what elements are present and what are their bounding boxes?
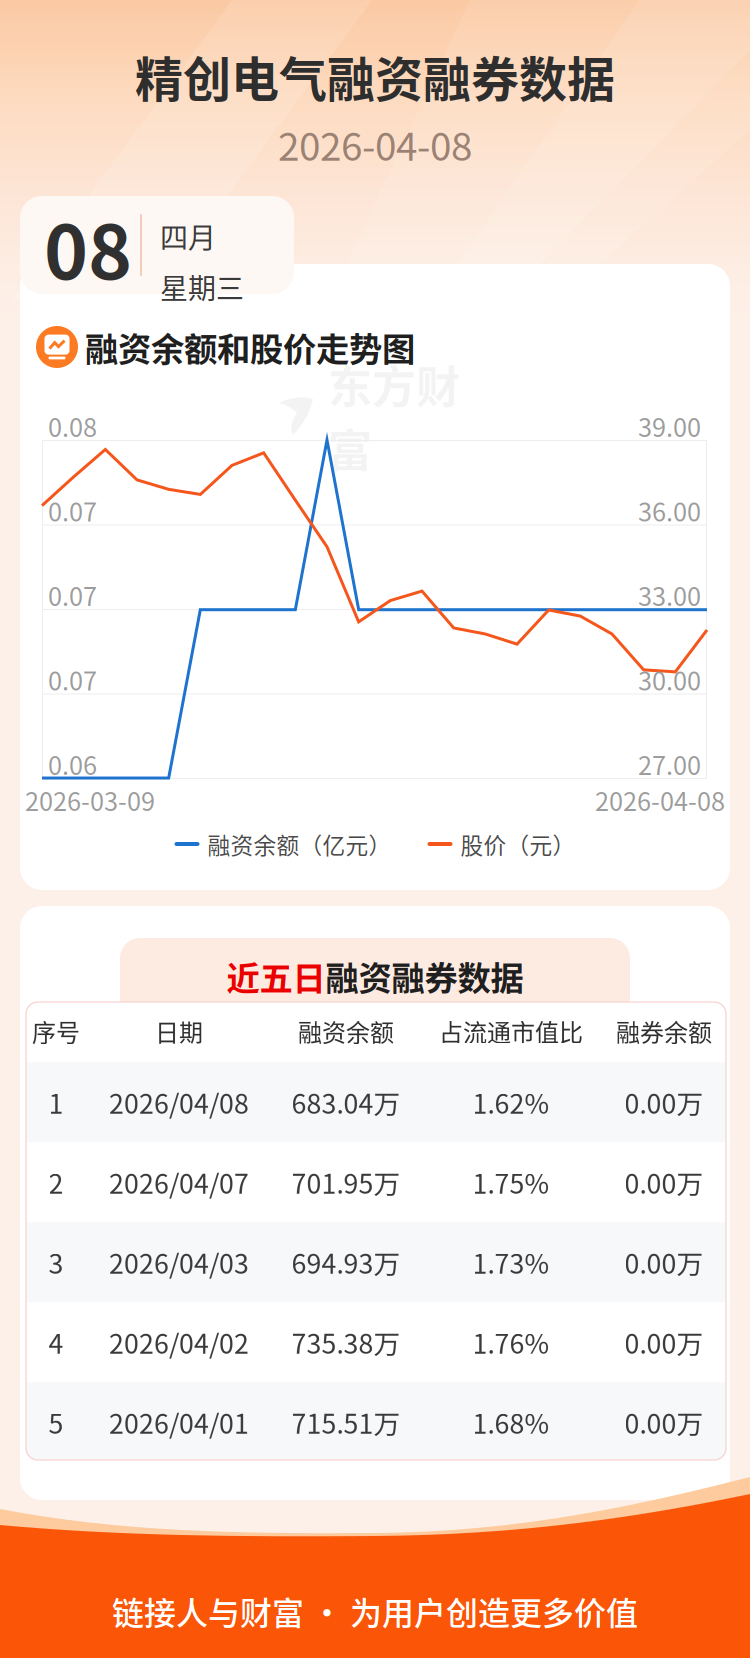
staticText: 0.07 [48,577,97,613]
staticText: 2026-04-08 [595,782,725,818]
staticText: 715.51万 [291,1403,400,1441]
staticText: 39.00 [638,408,701,444]
staticText: 33.00 [638,577,701,613]
staticText: 3 [48,1243,63,1281]
staticText: 2026/04/02 [109,1323,249,1361]
staticText: 星期三 [160,266,244,307]
staticText: 融资余额 [298,1014,394,1048]
staticText: 2026/04/08 [109,1083,249,1121]
staticText: 融资余额和股价走势图 [85,323,415,371]
staticText: 694.93万 [291,1243,400,1281]
staticText: 0.00万 [624,1323,703,1361]
staticText: 1.68% [472,1403,549,1441]
staticText: 36.00 [638,492,701,529]
staticText: 27.00 [638,746,701,782]
staticText: 0.08 [48,408,97,444]
staticText: 股价（元） [460,828,575,860]
staticText: 东方财富 [328,1176,460,1304]
staticText: 1.76% [472,1323,549,1361]
staticText: 5 [48,1403,63,1441]
staticText: 东方财富 [328,352,460,480]
staticText: 2 [48,1163,63,1201]
staticText: 08 [44,193,132,301]
staticText: 近五日 [226,952,325,1000]
staticText: 735.38万 [291,1323,400,1361]
staticText: 701.95万 [291,1163,400,1201]
staticText: 2026-03-09 [25,782,155,818]
staticText: 0.07 [48,661,97,698]
staticText: 30.00 [638,661,701,698]
staticText: 序号 [32,1014,80,1048]
staticText: 0.06 [48,746,97,782]
staticText: 链接人与财富 · 为用户创造更多价值 [112,1588,638,1634]
staticText: 0.00万 [624,1403,703,1441]
staticText: 占流通市值比 [439,1014,583,1048]
staticText: 日期 [155,1014,203,1048]
staticText: 1 [48,1083,63,1121]
staticText: 2026-04-08 [278,116,472,172]
staticText: 融资余额（亿元） [207,828,391,860]
staticText: 1.62% [472,1083,549,1121]
staticText: 683.04万 [291,1083,400,1121]
staticText: 精创电气融资融券数据 [135,41,615,111]
staticText: 四月 [160,216,216,256]
staticText: 4 [48,1323,63,1361]
staticText: 2026/04/07 [109,1163,249,1201]
staticText: 0.07 [48,492,97,529]
staticText: 1.75% [472,1163,549,1201]
staticText: 0.00万 [624,1163,703,1201]
staticText: 融资融券数据 [325,952,523,1000]
staticText: 2026/04/01 [109,1403,249,1441]
staticText: 0.00万 [624,1083,703,1121]
staticText: 融券余额 [616,1014,712,1048]
staticText: 0.00万 [624,1243,703,1281]
staticText: 1.73% [472,1243,549,1281]
staticText: 2026/04/03 [109,1243,249,1281]
